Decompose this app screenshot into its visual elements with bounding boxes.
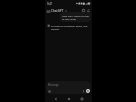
staticText: ChatGPT [51,9,64,13]
staticText: To check if a function exists, use hasat… [51,24,88,30]
staticText: 9:41 [47,2,53,6]
button[interactable]: Temporary chat [81,8,86,13]
button[interactable]: Voice mode [86,89,90,93]
button[interactable]: Dictate [82,90,85,93]
button[interactable]: ChatGPT [51,8,67,14]
staticText: How can I check if a function is [62,14,89,17]
button[interactable]: New chat [86,8,91,13]
button[interactable]: Add attachment [48,90,51,93]
button[interactable]: Recent apps [79,96,84,101]
staticText: in this code? [62,17,77,20]
button[interactable]: Open menu [46,9,50,13]
button[interactable]: How can I check if a function is [60,12,91,22]
staticText: Message [48,83,59,87]
button[interactable]: Home [66,96,71,101]
button[interactable]: Back [53,96,58,101]
button[interactable]: Message [46,81,91,94]
